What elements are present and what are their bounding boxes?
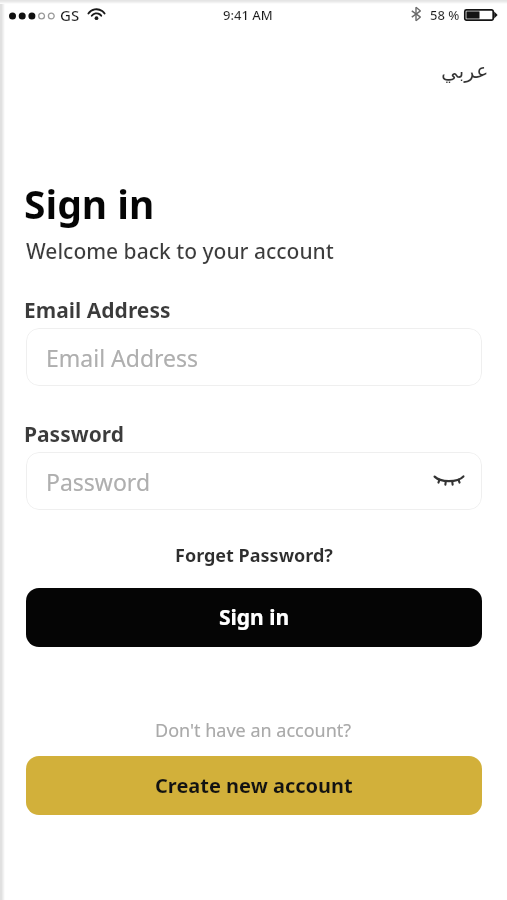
staticText: عربي	[441, 59, 489, 83]
button[interactable]: Don't have an account?	[147, 714, 360, 747]
staticText: 58 %	[430, 6, 460, 24]
staticText: Email Address	[24, 296, 171, 325]
staticText: Welcome back to your account	[26, 237, 334, 266]
other: Show password	[434, 476, 464, 486]
button[interactable]: Sign in	[26, 588, 482, 647]
staticText: Sign in	[219, 603, 290, 632]
button[interactable]: Email Address	[26, 328, 482, 386]
staticText: Email Address	[46, 342, 199, 373]
staticText: Password	[24, 420, 125, 449]
staticText: Create new account	[155, 772, 353, 799]
button[interactable]: Password	[26, 452, 482, 510]
button[interactable]: Create new account	[26, 756, 482, 815]
staticText: Sign in	[24, 177, 155, 230]
staticText: Forget Password?	[175, 543, 333, 568]
staticText: Password	[46, 466, 151, 497]
button[interactable]: عربي	[434, 54, 496, 88]
staticText: GS	[60, 5, 80, 25]
button[interactable]: Forget Password?	[167, 539, 341, 572]
staticText: Don't have an account?	[155, 718, 352, 743]
staticText: 9:41 AM	[223, 6, 273, 24]
